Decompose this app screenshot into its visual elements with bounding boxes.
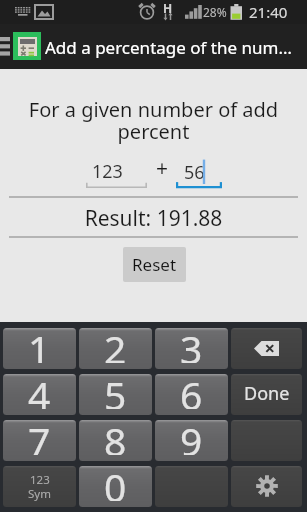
- staticText: Result: 191.88: [0, 204, 307, 233]
- staticText: 28%: [203, 4, 227, 20]
- button[interactable]: 4: [3, 374, 76, 415]
- button[interactable]: 1: [3, 328, 76, 369]
- button[interactable]: 9: [155, 420, 228, 461]
- staticText: 8: [104, 420, 127, 455]
- staticText: 9: [180, 420, 203, 455]
- staticText: 123: [92, 159, 123, 184]
- button[interactable]: App icon: [13, 32, 41, 60]
- button[interactable]: 8: [79, 420, 152, 461]
- button[interactable]: 7: [3, 420, 76, 461]
- staticText: Sym: [28, 486, 51, 502]
- staticText: 3: [180, 328, 203, 363]
- staticText: H: [163, 0, 173, 16]
- staticText: 123: [30, 472, 50, 488]
- button[interactable]: 3: [155, 328, 228, 369]
- staticText: 4: [28, 374, 51, 409]
- button[interactable]: 6: [155, 374, 228, 415]
- staticText: 2: [104, 328, 127, 363]
- staticText: 1: [28, 328, 51, 363]
- staticText: Done: [244, 381, 290, 406]
- button[interactable]: 5: [79, 374, 152, 415]
- button[interactable]: Key: [231, 420, 302, 461]
- staticText: 7: [28, 420, 51, 455]
- button[interactable]: Reset: [123, 247, 186, 282]
- button[interactable]: Key: [155, 466, 228, 507]
- staticText: 5: [104, 374, 127, 409]
- button[interactable]: 0: [79, 466, 152, 507]
- staticText: 56: [184, 160, 205, 185]
- staticText: 21:40: [249, 2, 288, 22]
- button[interactable]: Settings: [231, 466, 302, 507]
- staticText: Reset: [132, 253, 177, 276]
- button[interactable]: Done: [231, 374, 302, 415]
- staticText: percent: [0, 118, 307, 145]
- button[interactable]: Navigation menu: [0, 24, 11, 69]
- button[interactable]: Backspace: [231, 328, 302, 369]
- staticText: Add a percentage of the num…: [45, 36, 307, 69]
- button[interactable]: 2: [79, 328, 152, 369]
- staticText: +: [156, 154, 169, 183]
- staticText: For a given number of add: [0, 96, 307, 123]
- staticText: 0: [104, 466, 127, 501]
- button[interactable]: Symbols: [3, 466, 76, 507]
- staticText: 6: [180, 374, 203, 409]
